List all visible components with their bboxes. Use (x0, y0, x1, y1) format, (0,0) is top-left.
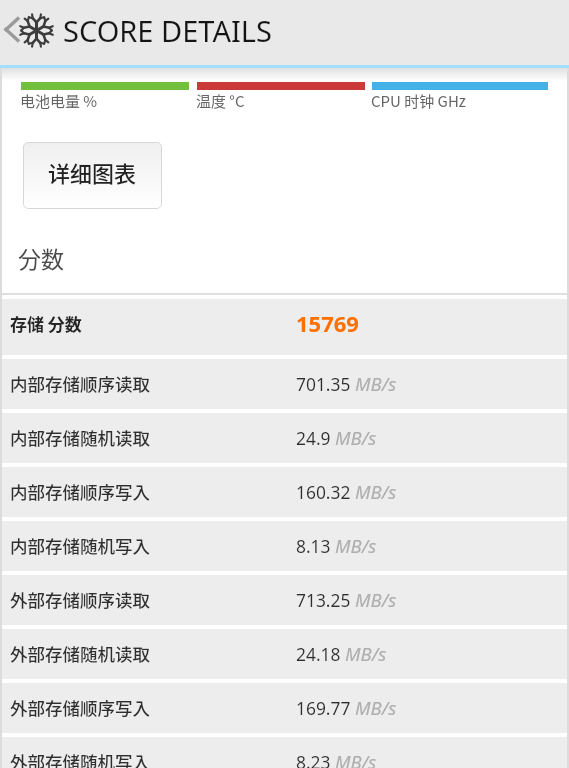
staticText: 分数 (18, 241, 64, 274)
staticText: 外部存储顺序写入 (10, 695, 150, 720)
staticText: MB/s (355, 587, 397, 612)
staticText: 169.77 (296, 696, 351, 720)
staticText: 电池电量 % (20, 90, 98, 112)
button[interactable]: 内部存储随机写入 (0, 521, 569, 571)
staticText: 内部存储顺序写入 (10, 479, 150, 504)
staticText: 24.18 (296, 642, 341, 666)
staticText: MB/s (335, 533, 377, 558)
staticText: MB/s (335, 749, 377, 768)
staticText: 701.35 (296, 372, 351, 396)
staticText: 160.32 (296, 480, 351, 504)
button[interactable]: 外部存储顺序写入 (0, 683, 569, 733)
staticText: 外部存储随机读取 (10, 641, 150, 666)
staticText: 15769 (296, 308, 359, 338)
button[interactable]: 存储 分数 (0, 299, 569, 355)
staticText: 8.23 (296, 750, 331, 768)
button[interactable]: 内部存储随机读取 (0, 413, 569, 463)
staticText: MB/s (335, 425, 377, 450)
staticText: MB/s (345, 641, 387, 666)
button[interactable]: 内部存储顺序读取 (0, 359, 569, 409)
staticText: 内部存储顺序读取 (10, 371, 150, 396)
staticText: MB/s (355, 479, 397, 504)
button[interactable]: 详细图表 (23, 142, 162, 209)
staticText: 外部存储随机写入 (10, 749, 150, 768)
staticText: MB/s (355, 695, 397, 720)
staticText: 内部存储随机读取 (10, 425, 150, 450)
button[interactable]: Back (4, 12, 53, 47)
button[interactable]: 外部存储随机读取 (0, 629, 569, 679)
button[interactable]: 外部存储顺序读取 (0, 575, 569, 625)
staticText: 713.25 (296, 588, 351, 612)
staticText: 内部存储随机写入 (10, 533, 150, 558)
staticText: 温度 °C (196, 90, 245, 112)
staticText: CPU 时钟 GHz (371, 90, 466, 112)
button[interactable]: 内部存储顺序写入 (0, 467, 569, 517)
staticText: 存储 分数 (10, 311, 82, 336)
button[interactable]: 外部存储随机写入 (0, 737, 569, 768)
staticText: 24.9 (296, 426, 331, 450)
staticText: 详细图表 (48, 156, 137, 188)
staticText: MB/s (355, 371, 397, 396)
staticText: 8.13 (296, 534, 331, 558)
staticText: 外部存储顺序读取 (10, 587, 150, 612)
staticText: SCORE DETAILS (63, 11, 272, 50)
